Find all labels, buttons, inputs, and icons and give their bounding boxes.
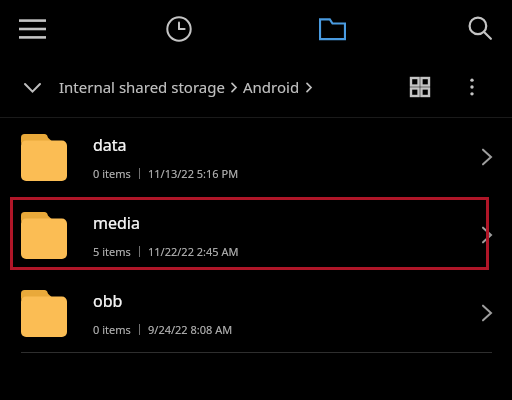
button[interactable]: Browse files bbox=[308, 5, 356, 53]
button[interactable]: Grid view bbox=[398, 65, 442, 109]
staticText: 0 items bbox=[93, 322, 131, 337]
button[interactable]: More options bbox=[450, 65, 494, 109]
button[interactable]: media bbox=[0, 196, 512, 274]
button[interactable]: Search bbox=[456, 5, 504, 53]
staticText: 5 items bbox=[93, 244, 131, 259]
button[interactable]: Expand path bbox=[8, 63, 56, 111]
staticText: 9/24/22 8:08 AM bbox=[148, 322, 233, 337]
staticText: Android bbox=[243, 77, 300, 97]
staticText: obb bbox=[93, 290, 123, 312]
staticText: 0 items bbox=[93, 166, 131, 181]
button[interactable]: Internal shared storage bbox=[59, 77, 312, 97]
staticText: data bbox=[93, 134, 127, 156]
button[interactable]: data bbox=[0, 118, 512, 196]
button[interactable]: Menu bbox=[8, 5, 56, 53]
button[interactable]: obb bbox=[0, 274, 512, 352]
staticText: 11/13/22 5:16 PM bbox=[148, 166, 239, 181]
staticText: media bbox=[93, 212, 140, 234]
button[interactable]: Recent files bbox=[155, 5, 203, 53]
staticText: 11/22/22 2:45 AM bbox=[148, 244, 239, 259]
staticText: Internal shared storage bbox=[59, 77, 225, 97]
